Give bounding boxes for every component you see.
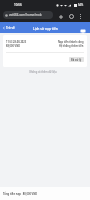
staticText: Hệ thống thêm tiền: [59, 44, 84, 47]
button[interactable]: 11:53 28-08-2023: [3, 35, 87, 67]
staticText: Không có thêm dữ liệu: [0, 70, 86, 73]
staticText: 88,000 VND: [6, 44, 21, 47]
staticText: 10:56: [14, 3, 22, 7]
staticText: vot684.com/home/mob: [9, 13, 42, 17]
button[interactable]: Tabs: [67, 12, 76, 21]
button[interactable]: Support chat: [80, 29, 86, 34]
staticText: Trở về: [6, 26, 15, 30]
staticText: 11:53 28-08-2023: [6, 40, 27, 43]
button[interactable]: Đã xử lý: [69, 57, 84, 62]
button[interactable]: Trở về: [0, 26, 15, 30]
staticText: Nạp tiền thành công: [58, 40, 84, 43]
button[interactable]: vot684.com/home/mob: [3, 11, 53, 19]
staticText: Lịch sử nạp tiền: [33, 26, 58, 30]
button[interactable]: New tab: [56, 12, 65, 21]
staticText: Đã xử lý: [71, 58, 82, 61]
staticText: 54%: [78, 3, 84, 7]
button[interactable]: More options: [76, 12, 85, 21]
staticText: Tổng tiền nạp: 88,000 VND: [3, 192, 38, 196]
